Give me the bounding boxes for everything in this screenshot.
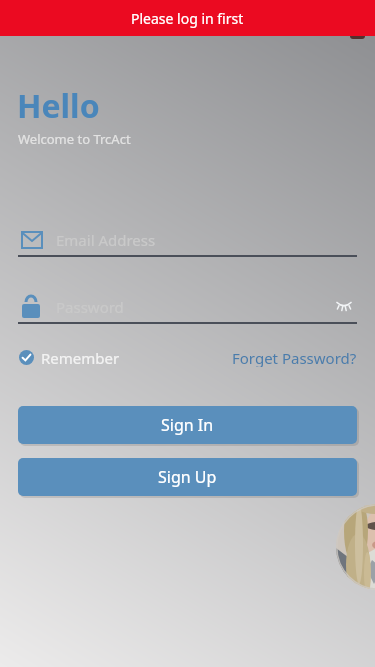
staticText: Welcome to TrcAct	[18, 130, 131, 148]
button[interactable]: Forget Password?	[232, 348, 357, 367]
button[interactable]: Sign Up	[18, 458, 357, 496]
staticText: Sign In	[161, 414, 214, 436]
button[interactable]	[19, 350, 34, 365]
button[interactable]: Password	[18, 294, 357, 320]
button[interactable]: Email Address	[21, 226, 357, 254]
staticText: Please log in first	[131, 9, 244, 28]
staticText: Sign Up	[158, 466, 217, 488]
staticText: Email Address	[56, 230, 156, 250]
button[interactable]	[336, 301, 352, 313]
staticText: Hello	[17, 84, 100, 128]
button[interactable]: Please log in first	[0, 0, 375, 36]
button[interactable]: Sign In	[18, 406, 357, 444]
staticText: Remember	[41, 348, 120, 367]
staticText: Password	[56, 297, 124, 317]
